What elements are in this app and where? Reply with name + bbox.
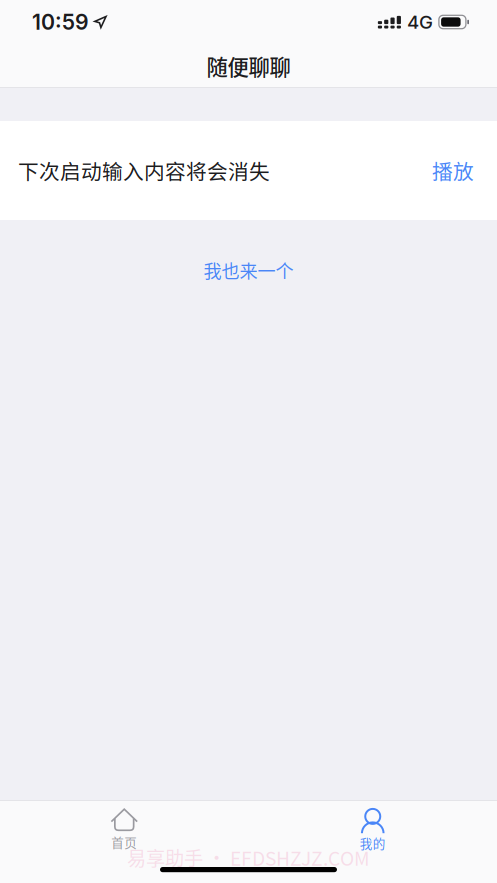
staticText: 我的 — [360, 834, 386, 852]
button[interactable]: 首页 — [0, 800, 248, 848]
staticText: 易享助手 · EFDSHZJZ.COM — [127, 844, 370, 871]
button[interactable]: 下次启动输入内容将会消失 — [0, 121, 497, 220]
staticText: 首页 — [111, 833, 137, 851]
button[interactable]: 我的 — [248, 800, 497, 848]
staticText: 播放 — [432, 155, 474, 185]
staticText: 下次启动输入内容将会消失 — [18, 155, 270, 185]
staticText: 随便聊聊 — [206, 51, 290, 81]
staticText: 4G — [407, 11, 433, 33]
staticText: 10:59 — [32, 9, 89, 35]
staticText: 我也来一个 — [203, 257, 293, 283]
button[interactable]: 我也来一个 — [0, 220, 497, 320]
